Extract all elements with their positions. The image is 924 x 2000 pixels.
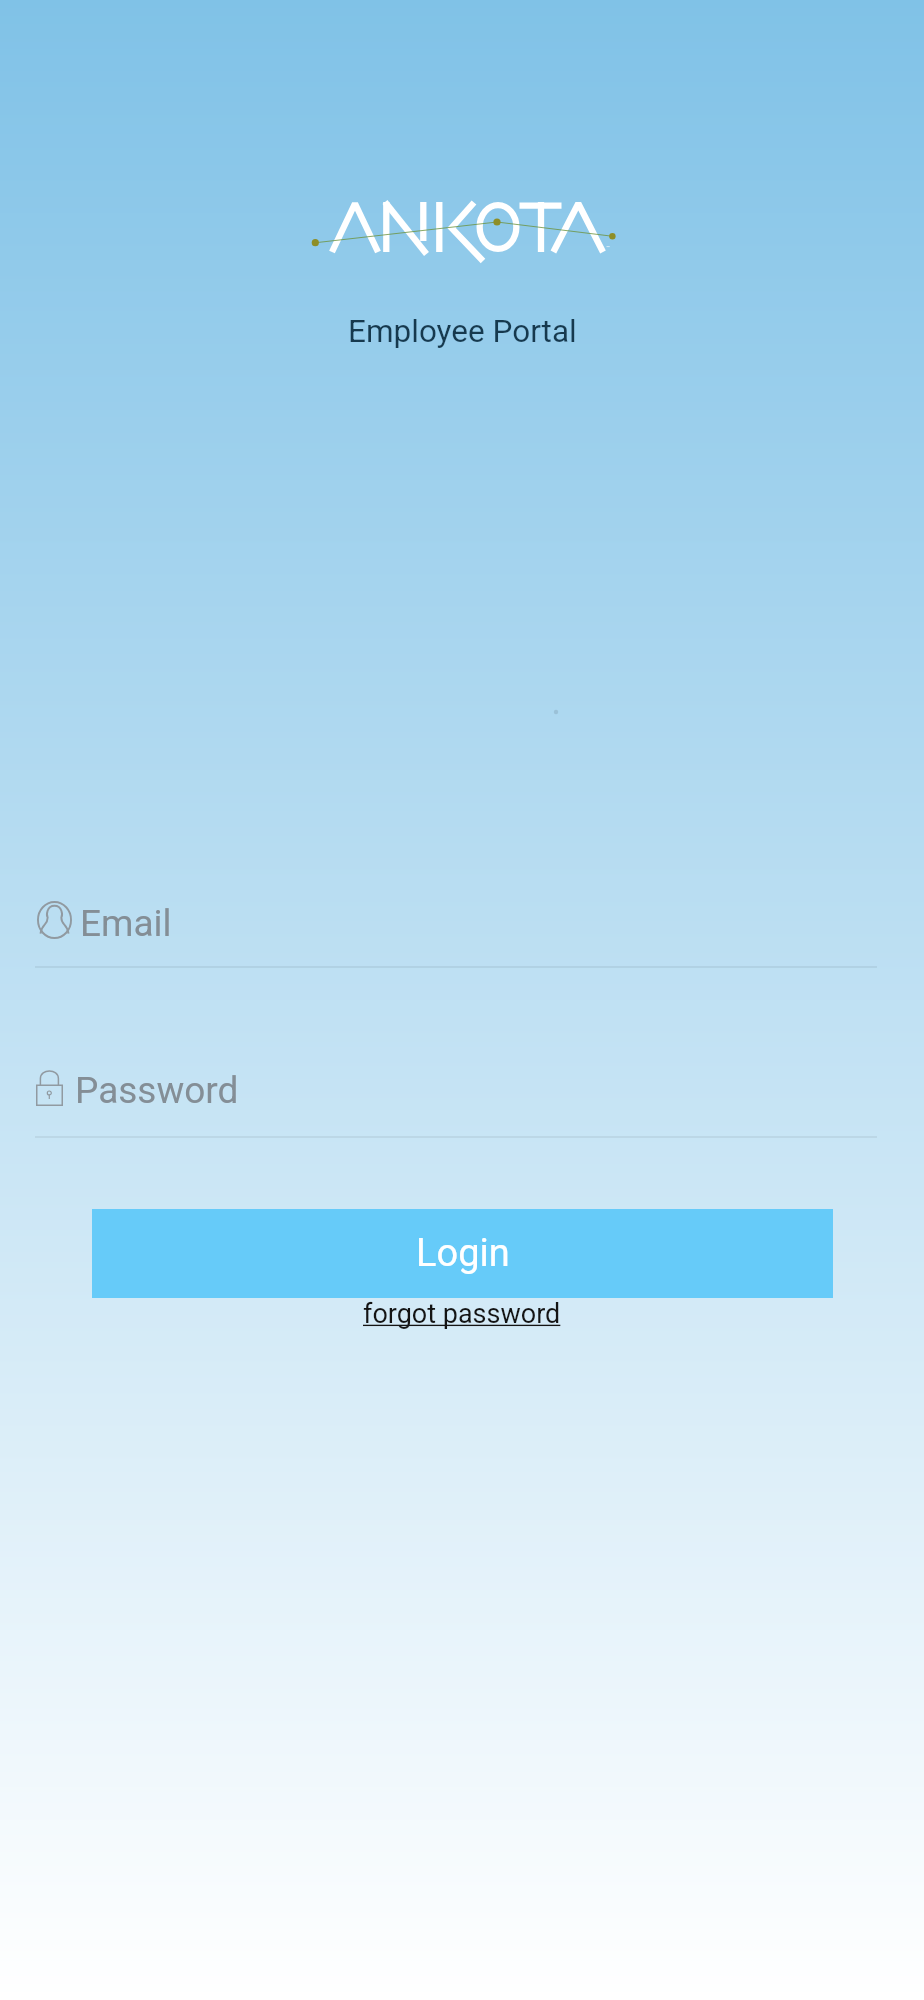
button[interactable]: forgot password [363,1298,561,1330]
other: Account [37,901,72,939]
other: Password [36,1068,63,1106]
staticText: Password [75,1069,239,1112]
staticText: Email [80,902,172,945]
staticText: Login [416,1231,510,1276]
other: Ankota logo [300,190,630,270]
button[interactable]: Account [35,904,877,976]
button[interactable]: Password [35,1071,877,1143]
button[interactable]: Login [92,1209,833,1298]
staticText: Employee Portal [348,313,577,350]
